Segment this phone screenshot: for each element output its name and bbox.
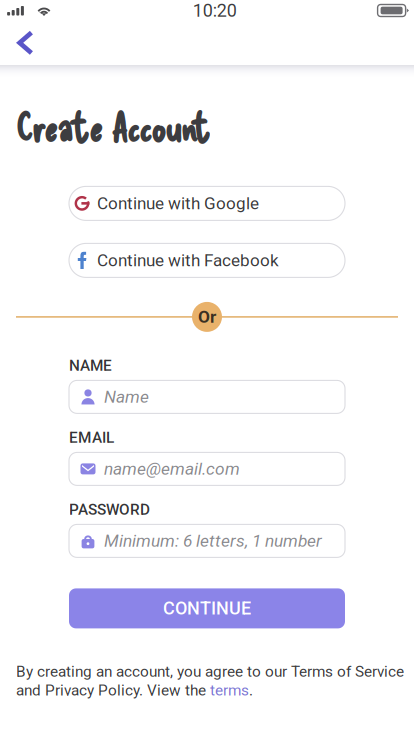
staticText: EMAIL <box>69 428 114 446</box>
button[interactable]: Name <box>69 380 345 413</box>
staticText: Continue with Google <box>97 193 259 213</box>
staticText: Name <box>104 387 149 407</box>
staticText: Or <box>198 307 216 327</box>
staticText: name@email.com <box>104 459 240 479</box>
staticText: terms <box>210 681 249 699</box>
staticText: Create Account <box>16 103 210 149</box>
button[interactable]: Minimum: 6 letters, 1 number <box>69 524 345 557</box>
staticText: NAME <box>69 356 112 374</box>
staticText: 10:20 <box>193 0 237 21</box>
staticText: . <box>249 681 253 699</box>
staticText: and Privacy Policy. View the <box>16 681 210 699</box>
staticText: CONTINUE <box>163 598 251 619</box>
button[interactable]: Continue with Facebook <box>69 243 345 277</box>
button[interactable]: name@email.com <box>69 452 345 485</box>
button[interactable]: Continue with Google <box>69 186 345 220</box>
button[interactable]: terms <box>210 681 249 699</box>
staticText: Continue with Facebook <box>97 250 279 270</box>
button[interactable]: Back <box>0 20 51 65</box>
button[interactable]: CONTINUE <box>69 588 345 628</box>
staticText: By creating an account, you agree to our… <box>16 662 404 680</box>
staticText: Minimum: 6 letters, 1 number <box>104 531 322 551</box>
staticText: PASSWORD <box>69 500 150 518</box>
